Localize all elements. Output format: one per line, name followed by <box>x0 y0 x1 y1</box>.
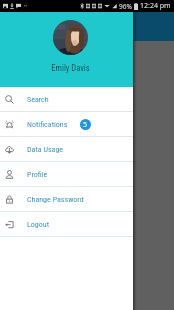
button[interactable]: Notifications <box>0 112 133 137</box>
staticText: 12:24 pm <box>140 1 171 11</box>
button[interactable]: Change Password <box>0 187 133 212</box>
button[interactable]: Logout <box>0 212 133 237</box>
staticText: Change Password <box>27 195 84 204</box>
button[interactable]: Profile <box>0 162 133 187</box>
staticText: Search <box>27 95 49 104</box>
staticText: 5 <box>83 120 88 130</box>
staticText: 96% <box>119 2 132 11</box>
staticText: Logout <box>27 220 50 229</box>
staticText: Emily Davis <box>51 63 90 73</box>
button[interactable]: Profile photo <box>53 20 88 55</box>
staticText: Data Usage <box>27 145 64 154</box>
button[interactable]: Data Usage <box>0 137 133 162</box>
staticText: Notifications <box>27 120 68 129</box>
button[interactable]: Search <box>0 87 133 112</box>
staticText: Profile <box>27 170 48 179</box>
